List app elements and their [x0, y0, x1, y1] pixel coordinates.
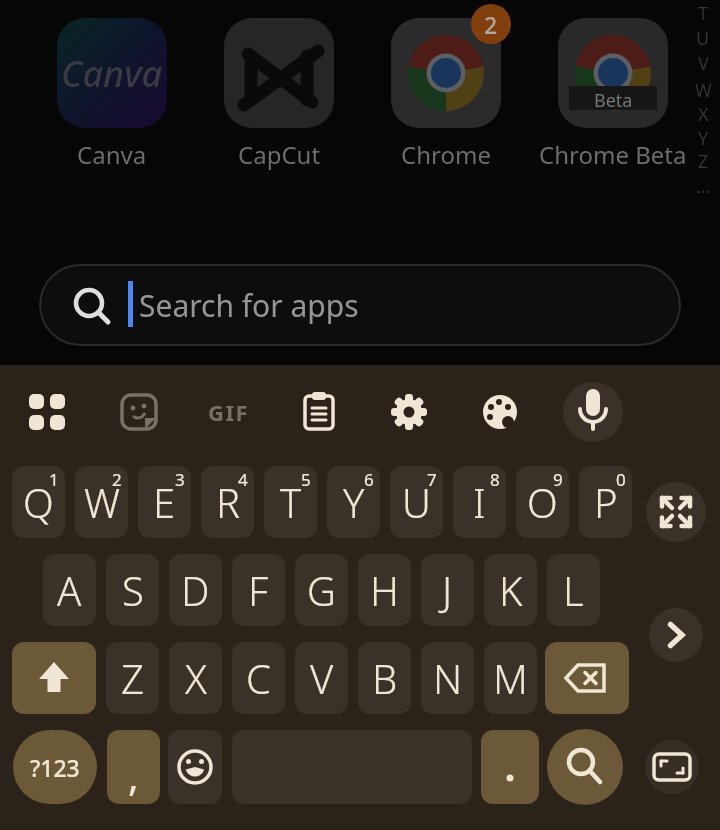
button[interactable] — [12, 642, 96, 714]
button[interactable]: D — [169, 554, 222, 626]
button[interactable]: J — [421, 554, 474, 626]
button[interactable]: F — [232, 554, 285, 626]
staticText: X — [185, 651, 207, 705]
staticText: … — [696, 174, 711, 196]
button[interactable] — [547, 729, 623, 805]
button[interactable] — [645, 740, 699, 794]
staticText: E — [153, 475, 176, 529]
button[interactable]: Q — [12, 466, 65, 538]
button[interactable] — [563, 382, 623, 442]
button[interactable] — [481, 730, 539, 804]
button[interactable]: H — [358, 554, 411, 626]
button[interactable]: W — [75, 466, 128, 538]
staticText: Q — [23, 475, 54, 529]
staticText: Chrome — [401, 138, 491, 171]
button[interactable]: T — [264, 466, 317, 538]
staticText: 3 — [175, 468, 185, 491]
button[interactable]: P — [579, 466, 632, 538]
button[interactable]: E — [138, 466, 191, 538]
staticText: 7 — [427, 468, 437, 491]
button[interactable] — [21, 386, 73, 438]
staticText: , — [128, 748, 139, 802]
staticText: A — [57, 563, 82, 617]
staticText: 8 — [490, 468, 500, 491]
staticText: P — [594, 475, 618, 529]
button[interactable]: B — [358, 642, 411, 714]
staticText: Y — [343, 475, 365, 529]
button[interactable] — [649, 608, 703, 662]
staticText: F — [248, 563, 269, 617]
staticText: V — [698, 51, 709, 73]
staticText: Z — [121, 651, 144, 705]
button[interactable]: Y — [327, 466, 380, 538]
button[interactable]: C — [232, 642, 285, 714]
button[interactable]: Canva — [32, 18, 192, 171]
staticText: C — [246, 651, 271, 705]
button[interactable]: , — [107, 730, 160, 804]
staticText: 4 — [238, 468, 248, 491]
staticText: N — [433, 651, 463, 705]
button[interactable]: X — [169, 642, 222, 714]
staticText: 2 — [112, 468, 122, 491]
button[interactable]: U — [390, 466, 443, 538]
button[interactable]: N — [421, 642, 474, 714]
button[interactable]: Search for apps — [39, 264, 681, 346]
staticText: Canva — [77, 138, 147, 171]
button[interactable]: M — [484, 642, 537, 714]
staticText: GIF — [208, 397, 250, 427]
button[interactable]: Z — [106, 642, 159, 714]
staticText: Z — [698, 149, 709, 171]
button[interactable]: A — [43, 554, 96, 626]
button[interactable]: Chrome — [366, 18, 526, 171]
staticText: M — [493, 651, 528, 705]
staticText: 6 — [364, 468, 374, 491]
button[interactable]: CapCut — [199, 18, 359, 171]
staticText: S — [122, 563, 144, 617]
staticText: X — [698, 102, 709, 124]
button[interactable] — [646, 482, 706, 542]
staticText: CapCut — [238, 138, 321, 171]
staticText: U — [402, 475, 431, 529]
button[interactable]: GIF — [203, 386, 255, 438]
staticText: ?123 — [30, 752, 80, 783]
staticText: I — [473, 475, 486, 529]
staticText: T — [280, 475, 302, 529]
button[interactable]: G — [295, 554, 348, 626]
button[interactable]: L — [547, 554, 600, 626]
button[interactable] — [545, 642, 629, 714]
staticText: 0 — [616, 468, 626, 491]
staticText: 1 — [49, 468, 59, 491]
button[interactable] — [113, 386, 165, 438]
button[interactable]: Beta — [533, 18, 693, 171]
staticText: Canva — [61, 49, 163, 98]
staticText: G — [307, 563, 336, 617]
staticText: Search for apps — [139, 285, 359, 326]
button[interactable]: S — [106, 554, 159, 626]
staticText: H — [370, 563, 399, 617]
button[interactable]: K — [484, 554, 537, 626]
staticText: V — [310, 651, 334, 705]
button[interactable]: I — [453, 466, 506, 538]
staticText: L — [563, 563, 584, 617]
staticText: T — [698, 1, 709, 23]
button[interactable]: V — [295, 642, 348, 714]
button[interactable] — [474, 386, 526, 438]
staticText: Y — [698, 126, 709, 148]
staticText: W — [84, 475, 120, 529]
staticText: Chrome Beta — [539, 138, 687, 171]
button[interactable] — [168, 730, 222, 804]
button[interactable] — [293, 386, 345, 438]
button[interactable] — [383, 386, 435, 438]
staticText: R — [216, 475, 240, 529]
staticText: J — [442, 563, 453, 617]
staticText: D — [181, 563, 210, 617]
button[interactable]: R — [201, 466, 254, 538]
staticText: 5 — [301, 468, 311, 491]
staticText: Beta — [594, 88, 633, 113]
staticText: O — [527, 475, 558, 529]
button[interactable]: O — [516, 466, 569, 538]
staticText: U — [696, 26, 710, 48]
button[interactable]: ?123 — [13, 730, 97, 804]
staticText: W — [695, 78, 712, 100]
